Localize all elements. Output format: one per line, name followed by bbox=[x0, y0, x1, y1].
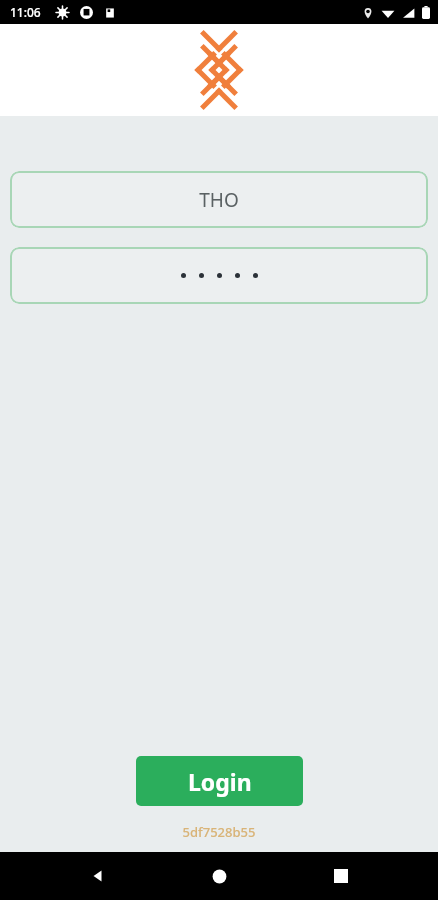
staticText: THO bbox=[199, 187, 239, 213]
button[interactable]: THO bbox=[10, 171, 428, 228]
button[interactable]: Back bbox=[74, 852, 122, 900]
button[interactable]: Login bbox=[136, 756, 303, 806]
staticText: 5df7528b55 bbox=[0, 823, 438, 841]
button[interactable]: Recent apps bbox=[317, 852, 365, 900]
staticText: Login bbox=[188, 766, 252, 797]
staticText: 11:06 bbox=[10, 4, 41, 20]
button[interactable]: Home bbox=[195, 852, 243, 900]
button[interactable]: Password bbox=[10, 247, 428, 304]
